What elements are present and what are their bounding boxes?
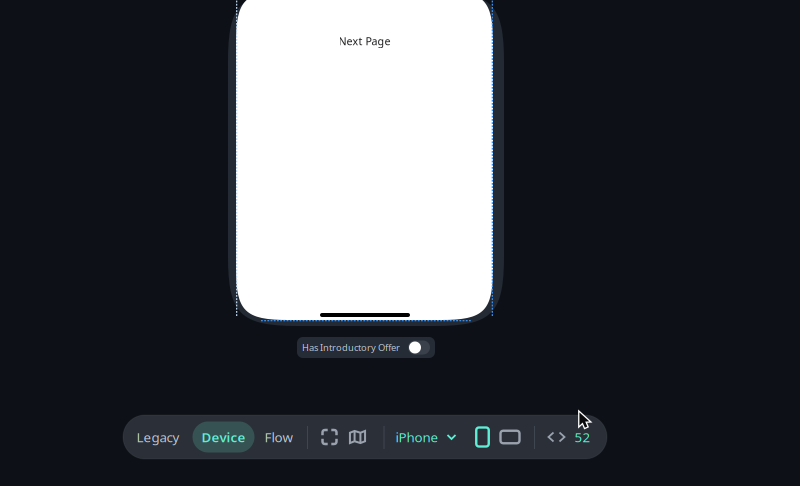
staticText: Device	[201, 428, 245, 446]
button[interactable]: Landscape	[496, 422, 524, 452]
staticText: Legacy	[136, 428, 179, 446]
button[interactable]: Map	[343, 422, 371, 452]
button[interactable]: iPhone	[389, 422, 462, 452]
staticText: Flow	[264, 428, 292, 446]
button[interactable]: Device	[192, 421, 254, 452]
staticText: Has Introductory Offer	[302, 341, 400, 354]
staticText: Next Page	[338, 34, 390, 48]
button[interactable]: Portrait	[469, 422, 495, 452]
button[interactable]: Legacy	[127, 421, 188, 452]
button[interactable]: Fit to screen	[315, 422, 343, 452]
button[interactable]: Has Introductory Offer	[297, 337, 435, 358]
staticText: iPhone	[395, 428, 438, 446]
button[interactable]: Flow	[255, 421, 301, 452]
staticText: 52	[574, 428, 590, 446]
button[interactable]: 52	[544, 422, 593, 452]
